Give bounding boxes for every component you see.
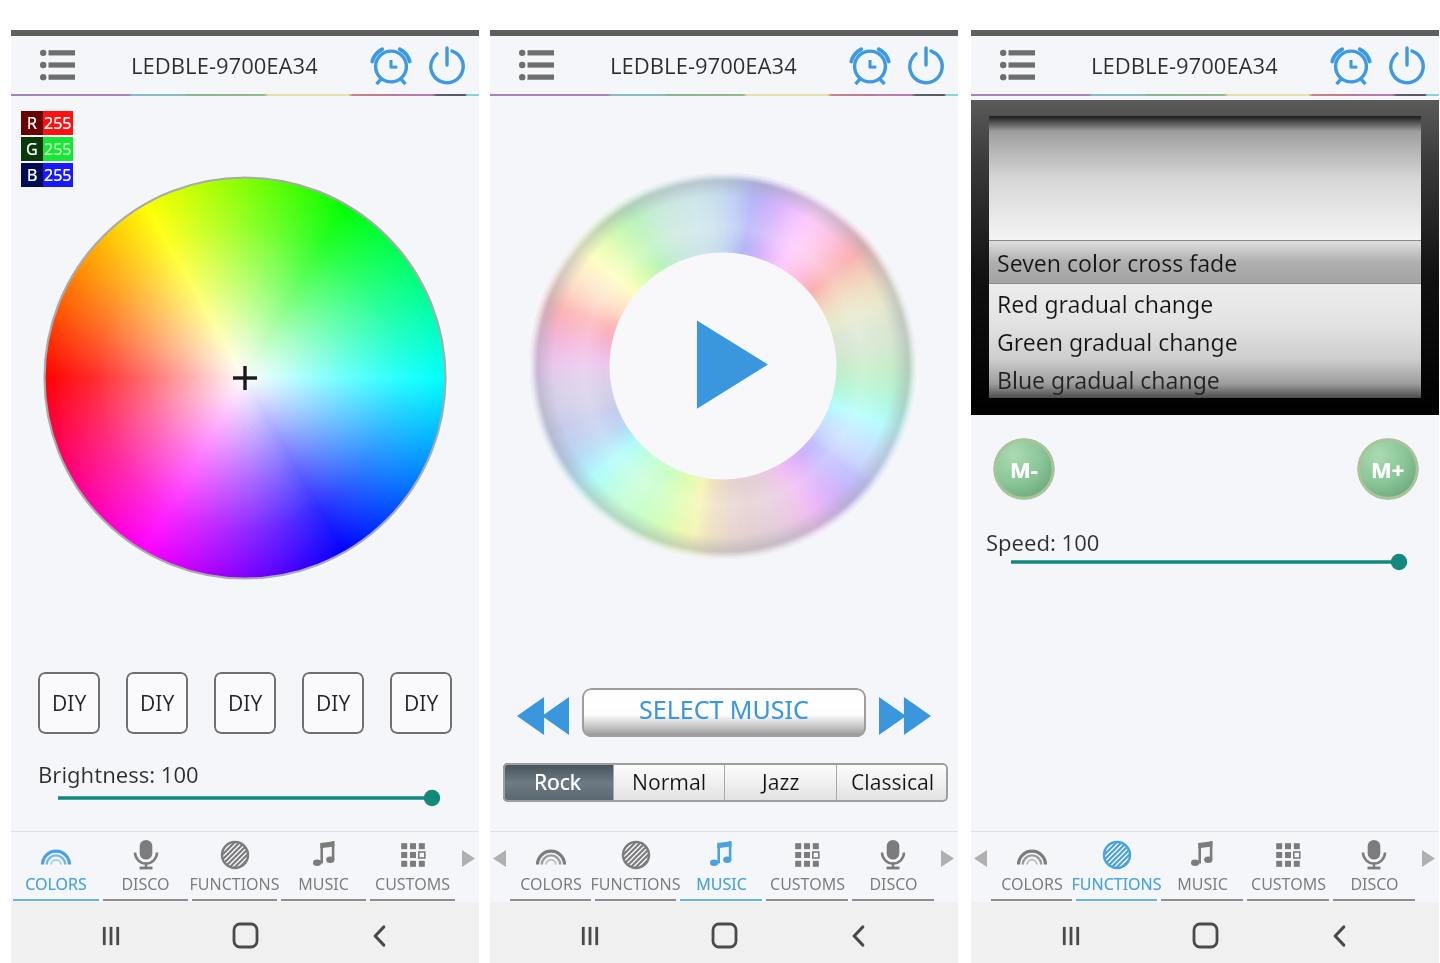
button[interactable]: Color picker wheel xyxy=(43,176,447,580)
staticText: DISCO xyxy=(1350,873,1399,895)
staticText: LEDBLE-9700EA34 xyxy=(1091,50,1278,80)
button[interactable]: Green gradual change xyxy=(989,322,1421,360)
button[interactable]: Power xyxy=(419,36,475,93)
staticText: M+ xyxy=(1371,454,1405,484)
button[interactable]: Power xyxy=(898,36,954,93)
button[interactable]: M- xyxy=(993,438,1055,500)
button[interactable]: FUNCTIONS xyxy=(593,831,678,902)
button[interactable]: Back xyxy=(1305,905,1375,963)
staticText: Blue gradual change xyxy=(997,364,1220,395)
button[interactable]: Previous track xyxy=(510,685,576,747)
staticText: Green gradual change xyxy=(997,326,1238,357)
button[interactable]: DIY xyxy=(390,672,452,734)
staticText: FUNCTIONS xyxy=(590,873,681,895)
button[interactable]: Home xyxy=(689,905,759,963)
button[interactable]: CUSTOMS xyxy=(764,831,850,902)
staticText: COLORS xyxy=(1001,873,1063,895)
button[interactable]: MUSIC xyxy=(1159,831,1245,902)
staticText: R xyxy=(27,112,37,134)
staticText: 255 xyxy=(44,164,72,186)
button[interactable]: CUSTOMS xyxy=(368,831,457,902)
staticText: Jazz xyxy=(762,768,800,797)
button[interactable]: DIY xyxy=(302,672,364,734)
staticText: Seven color cross fade xyxy=(997,247,1238,278)
staticText: LEDBLE-9700EA34 xyxy=(131,50,318,80)
staticText: MUSIC xyxy=(298,873,349,895)
staticText: Brightness: 100 xyxy=(38,759,199,789)
staticText: CUSTOMS xyxy=(1251,873,1326,895)
staticText: 255 xyxy=(44,138,72,160)
button[interactable]: DIY xyxy=(38,672,100,734)
staticText: DISCO xyxy=(869,873,918,895)
button[interactable]: Red gradual change xyxy=(989,284,1421,322)
staticText: FUNCTIONS xyxy=(1071,873,1162,895)
staticText: MUSIC xyxy=(1177,873,1228,895)
button[interactable]: CUSTOMS xyxy=(1245,831,1331,902)
button[interactable]: COLORS xyxy=(508,831,593,902)
staticText: Speed: 100 xyxy=(986,527,1100,557)
button[interactable]: DIY xyxy=(214,672,276,734)
button[interactable]: Home xyxy=(210,905,280,963)
staticText: Normal xyxy=(632,768,707,797)
button[interactable]: COLORS xyxy=(989,831,1074,902)
staticText: LEDBLE-9700EA34 xyxy=(610,50,797,80)
staticText: COLORS xyxy=(520,873,582,895)
button[interactable]: Menu xyxy=(981,36,1053,93)
button[interactable]: FUNCTIONS xyxy=(190,831,279,902)
button[interactable]: Level slider xyxy=(11,783,479,813)
button[interactable]: FUNCTIONS xyxy=(1074,831,1159,902)
staticText: DIY xyxy=(404,689,439,718)
button[interactable]: Classical xyxy=(837,763,948,802)
button[interactable]: DISCO xyxy=(1331,831,1417,902)
button[interactable]: Recent apps xyxy=(76,905,146,963)
staticText: COLORS xyxy=(25,873,87,895)
staticText: DIY xyxy=(316,689,351,718)
button[interactable]: Jazz xyxy=(725,763,836,802)
button[interactable]: Rock xyxy=(503,763,613,802)
button[interactable]: Next track xyxy=(872,685,938,747)
button[interactable]: Recent apps xyxy=(1036,905,1106,963)
button[interactable]: MUSIC xyxy=(279,831,368,902)
staticText: DIY xyxy=(140,689,175,718)
button[interactable]: Timer xyxy=(1323,36,1379,93)
button[interactable]: Back xyxy=(824,905,894,963)
staticText: 255 xyxy=(44,112,72,134)
button[interactable]: Timer xyxy=(363,36,419,93)
staticText: G xyxy=(26,138,38,160)
staticText: M- xyxy=(1010,454,1038,484)
button[interactable]: SELECT MUSIC xyxy=(582,688,866,737)
button[interactable]: M+ xyxy=(1357,438,1419,500)
staticText: CUSTOMS xyxy=(770,873,845,895)
staticText: B xyxy=(27,164,38,186)
button[interactable]: Timer xyxy=(842,36,898,93)
staticText: Red gradual change xyxy=(997,288,1214,319)
button[interactable]: COLORS xyxy=(11,831,101,902)
button[interactable]: MUSIC xyxy=(678,831,764,902)
button[interactable]: Recent apps xyxy=(555,905,625,963)
button[interactable]: DIY xyxy=(126,672,188,734)
staticText: Classical xyxy=(851,768,935,797)
button[interactable]: Blue gradual change xyxy=(989,360,1421,398)
staticText: CUSTOMS xyxy=(375,873,450,895)
button[interactable]: Level slider xyxy=(971,547,1439,577)
button[interactable]: Menu xyxy=(500,36,572,93)
staticText: MUSIC xyxy=(696,873,747,895)
staticText: FUNCTIONS xyxy=(189,873,280,895)
button[interactable]: DISCO xyxy=(101,831,190,902)
staticText: DIY xyxy=(228,689,263,718)
button[interactable]: Play music xyxy=(530,173,916,559)
button[interactable]: Normal xyxy=(614,763,724,802)
button[interactable]: Home xyxy=(1170,905,1240,963)
staticText: DISCO xyxy=(121,873,170,895)
button[interactable]: Back xyxy=(345,905,415,963)
button[interactable]: DISCO xyxy=(850,831,936,902)
staticText: DIY xyxy=(52,689,87,718)
button[interactable]: Power xyxy=(1379,36,1435,93)
button[interactable]: Seven color cross fade xyxy=(989,241,1421,283)
button[interactable]: Menu xyxy=(21,36,93,93)
staticText: Rock xyxy=(534,768,582,797)
staticText: SELECT MUSIC xyxy=(639,692,809,726)
